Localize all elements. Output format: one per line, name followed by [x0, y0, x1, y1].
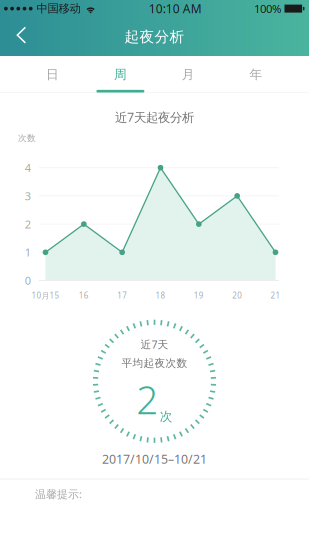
- button[interactable]: 月: [155, 56, 221, 92]
- staticText: 温馨提示:: [35, 487, 82, 501]
- staticText: 中国移动: [37, 1, 81, 16]
- staticText: 次: [160, 409, 173, 425]
- staticText: 起夜分析: [124, 28, 184, 46]
- staticText: 月: [182, 66, 195, 82]
- staticText: 3: [25, 188, 31, 203]
- staticText: 2: [25, 217, 31, 232]
- staticText: 100%: [254, 1, 281, 16]
- staticText: 16: [79, 290, 89, 301]
- staticText: 10:10 AM: [149, 0, 202, 17]
- staticText: 0: [25, 273, 31, 288]
- button[interactable]: Back: [4, 18, 38, 52]
- staticText: 日: [46, 66, 59, 82]
- staticText: 2017/10/15–10/21: [102, 451, 207, 467]
- staticText: 20: [232, 290, 242, 301]
- staticText: 2: [136, 373, 158, 426]
- staticText: 近7天起夜分析: [115, 109, 194, 125]
- staticText: 1: [25, 245, 31, 260]
- staticText: 18: [155, 290, 165, 301]
- button[interactable]: 周: [87, 56, 153, 92]
- button[interactable]: 年: [223, 56, 289, 92]
- staticText: 周: [114, 66, 127, 82]
- staticText: 17: [117, 290, 127, 301]
- staticText: 年: [249, 66, 262, 82]
- staticText: 近7天: [140, 337, 168, 351]
- staticText: 4: [25, 160, 31, 175]
- staticText: 次数: [18, 132, 36, 143]
- staticText: 19: [194, 290, 204, 301]
- button[interactable]: 日: [20, 56, 86, 92]
- staticText: 10月15: [31, 290, 59, 301]
- staticText: 平均起夜次数: [121, 356, 187, 370]
- staticText: 21: [270, 290, 280, 301]
